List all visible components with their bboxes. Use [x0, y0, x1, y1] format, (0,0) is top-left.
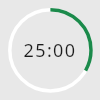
staticText: 25:00: [23, 38, 77, 63]
button[interactable]: Timer: [0, 0, 100, 100]
